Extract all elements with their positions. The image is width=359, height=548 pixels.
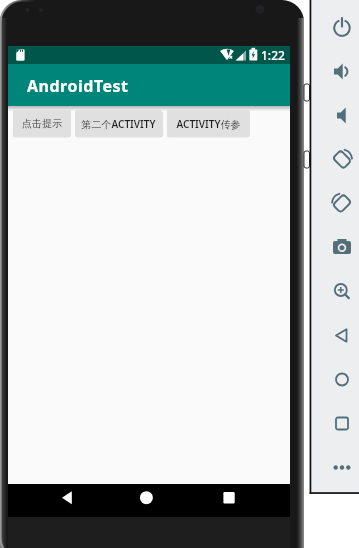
button[interactable]	[328, 190, 356, 218]
button[interactable]	[328, 366, 356, 394]
button[interactable]	[202, 485, 257, 516]
staticText: 1:22	[261, 47, 285, 63]
staticText: ACTIVITY传参	[176, 117, 241, 131]
button[interactable]	[328, 410, 356, 438]
button[interactable]: 点击提示	[13, 110, 71, 137]
button[interactable]	[40, 485, 95, 516]
button[interactable]	[120, 485, 175, 516]
button[interactable]	[328, 454, 356, 482]
staticText: 点击提示	[22, 117, 62, 130]
button[interactable]	[328, 14, 356, 42]
staticText: AndroidTest	[27, 75, 129, 97]
button[interactable]	[328, 278, 356, 306]
button[interactable]: 第二个ACTIVITY	[75, 110, 162, 137]
button[interactable]	[328, 146, 356, 174]
button[interactable]	[328, 322, 356, 350]
staticText: 第二个ACTIVITY	[81, 117, 156, 131]
button[interactable]	[328, 102, 356, 130]
button[interactable]	[328, 234, 356, 262]
button[interactable]: ACTIVITY传参	[167, 110, 250, 137]
button[interactable]	[328, 58, 356, 86]
